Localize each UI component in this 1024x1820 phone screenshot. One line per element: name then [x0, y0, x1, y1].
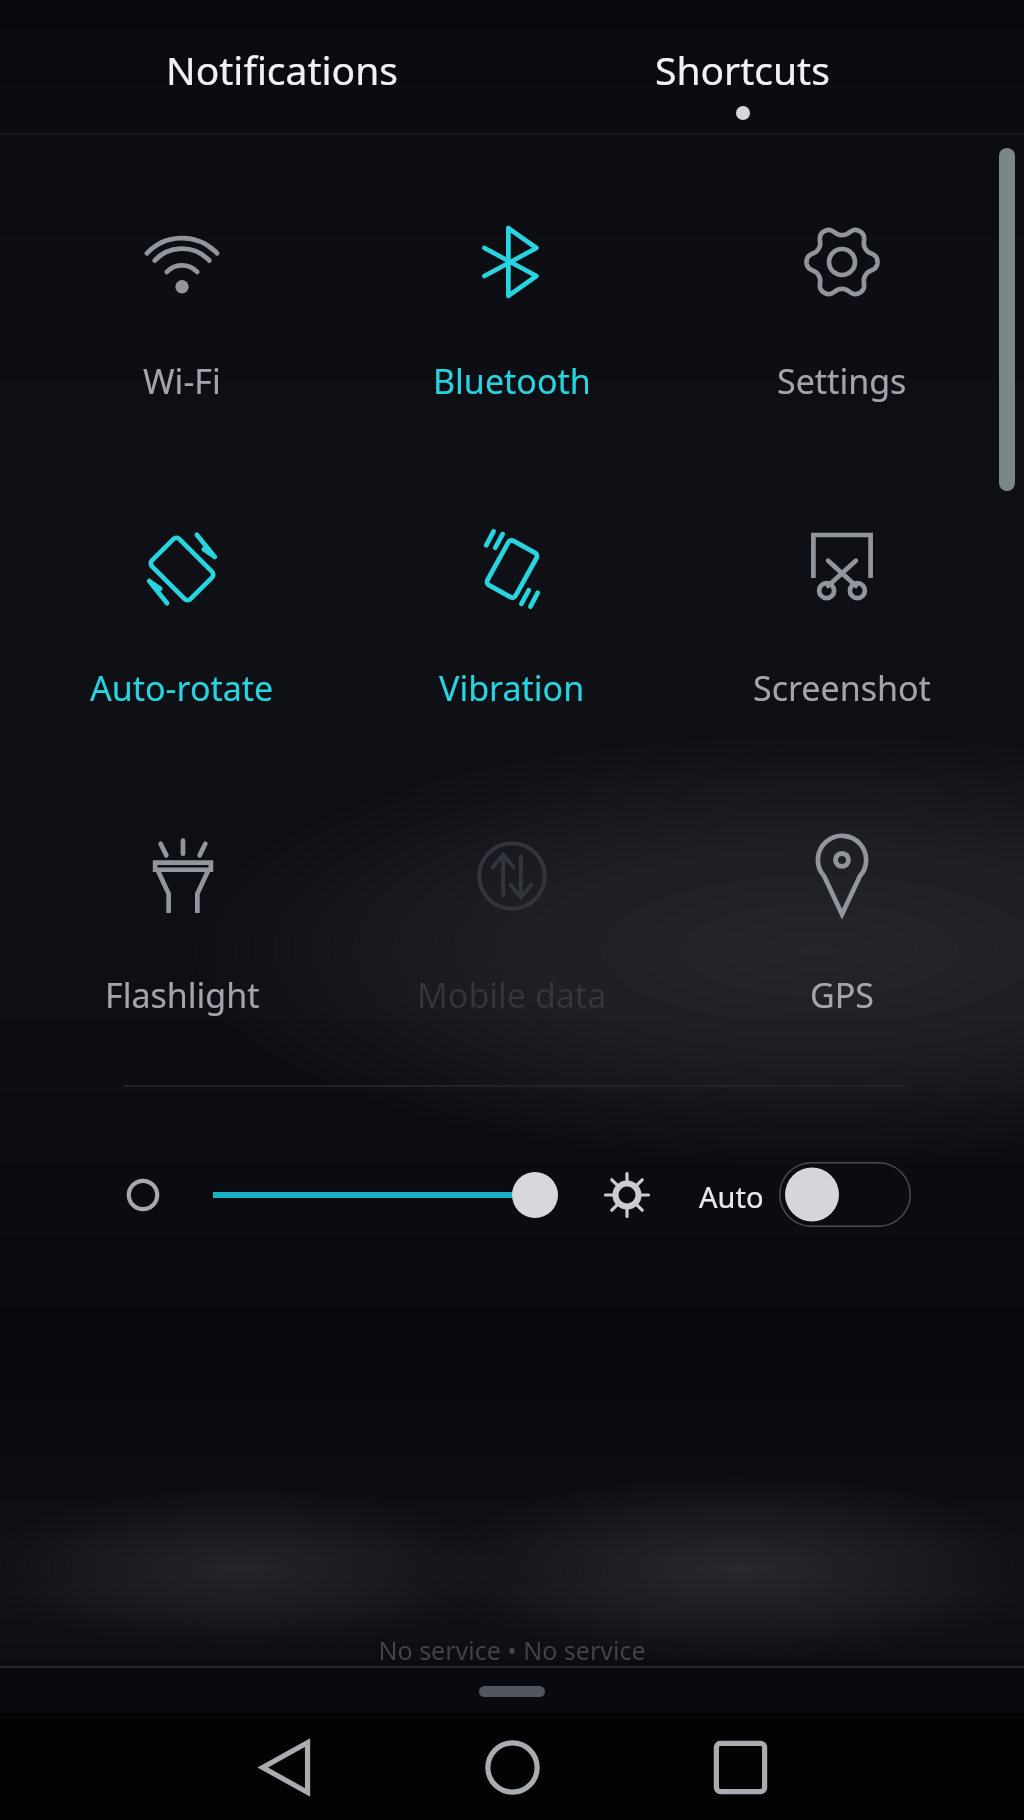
- button[interactable]: Auto-rotate: [18, 459, 346, 719]
- staticText: Bluetooth: [433, 358, 591, 404]
- button[interactable]: Settings: [678, 152, 1006, 412]
- staticText: Wi-Fi: [143, 358, 221, 404]
- button[interactable]: Brightness: [595, 1163, 659, 1227]
- button[interactable]: Auto brightness toggle: [779, 1162, 911, 1227]
- button[interactable]: Vibration: [348, 459, 676, 719]
- button[interactable]: Recent apps: [626, 1713, 854, 1820]
- staticText: GPS: [810, 972, 874, 1018]
- staticText: Screenshot: [753, 665, 931, 711]
- button[interactable]: Back: [170, 1713, 398, 1820]
- staticText: No service • No service: [0, 1633, 1024, 1667]
- staticText: Auto-rotate: [90, 665, 274, 711]
- button[interactable]: Flashlight: [18, 766, 346, 1026]
- button[interactable]: GPS: [678, 766, 1006, 1026]
- button[interactable]: Brightness slider: [198, 1159, 578, 1229]
- staticText: Mobile data: [417, 972, 607, 1018]
- button[interactable]: Screenshot: [678, 459, 1006, 719]
- button[interactable]: Minimum brightness: [115, 1167, 171, 1223]
- staticText: Auto: [699, 1177, 764, 1216]
- button[interactable]: Bluetooth: [348, 152, 676, 412]
- staticText: Flashlight: [105, 972, 260, 1018]
- button[interactable]: Home: [398, 1713, 626, 1820]
- button[interactable]: Wi-Fi: [18, 152, 346, 412]
- button[interactable]: Shortcuts: [512, 0, 973, 133]
- staticText: Notifications: [166, 43, 398, 96]
- staticText: Settings: [777, 358, 907, 404]
- button[interactable]: Notifications: [51, 0, 512, 133]
- staticText: Vibration: [439, 665, 585, 711]
- button[interactable]: Mobile data: [348, 766, 676, 1026]
- staticText: Shortcuts: [655, 43, 830, 96]
